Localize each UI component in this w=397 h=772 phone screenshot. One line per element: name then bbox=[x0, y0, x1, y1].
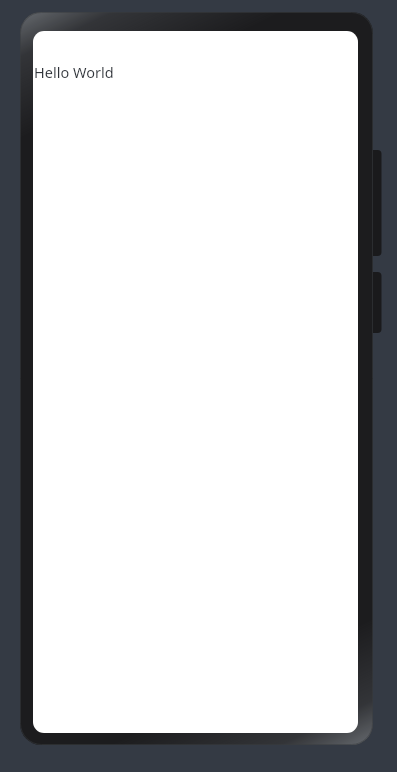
staticText: Hello World bbox=[34, 62, 114, 82]
